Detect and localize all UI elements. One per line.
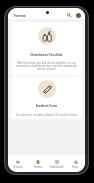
button[interactable]: Forms xyxy=(28,158,47,169)
button[interactable]: Projects xyxy=(8,158,28,169)
button[interactable]: Dashboard xyxy=(47,158,66,169)
button[interactable]: Cleanliness Checklist xyxy=(11,22,82,76)
button[interactable]: Profile xyxy=(74,11,82,19)
button[interactable]: Search xyxy=(65,11,73,19)
button[interactable]: Shop xyxy=(66,158,85,169)
staticText: Incident Form xyxy=(11,104,82,108)
staticText: Shop xyxy=(72,165,79,169)
staticText: Cleanliness Checklist xyxy=(11,53,82,57)
staticText: Projects xyxy=(13,165,23,169)
staticText: Forms xyxy=(34,165,42,169)
button[interactable]: Incident Form xyxy=(11,77,82,119)
staticText: With this tool you will check whether or… xyxy=(14,61,79,71)
staticText: To report an incident, please fill out t… xyxy=(14,113,79,117)
staticText: Dashboard xyxy=(50,165,64,169)
staticText: Forms xyxy=(14,13,26,18)
